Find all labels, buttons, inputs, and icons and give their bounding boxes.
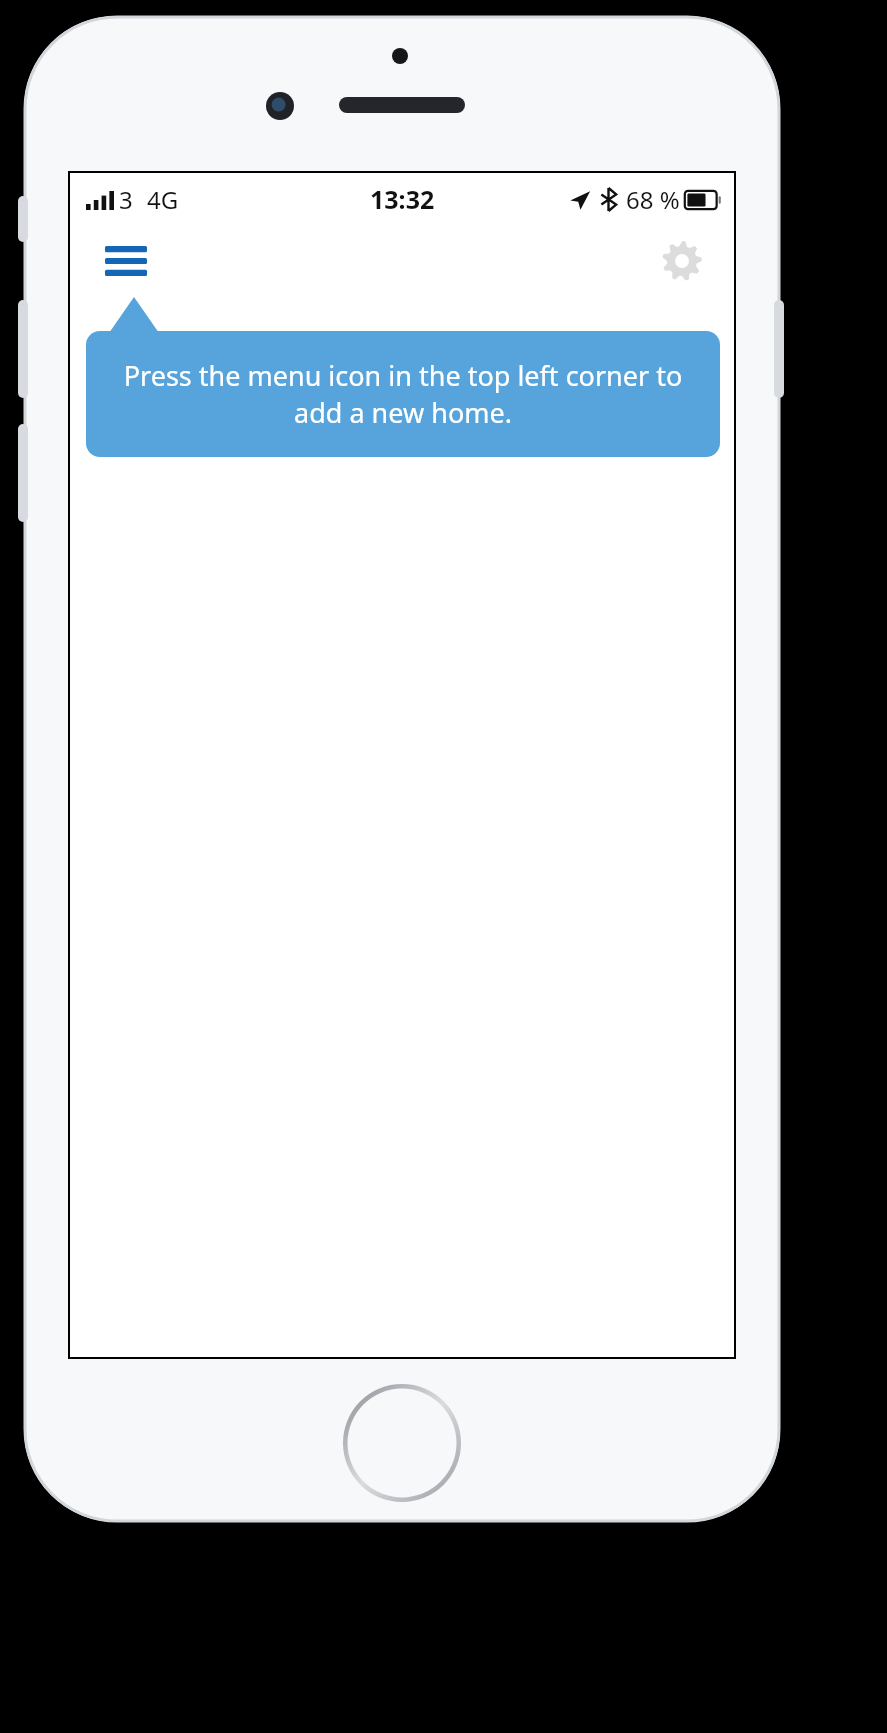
button[interactable]: Open navigation menu xyxy=(98,233,154,289)
button[interactable]: Settings xyxy=(654,233,710,289)
staticText: Press the menu icon in the top left corn… xyxy=(108,357,698,431)
staticText: 4G xyxy=(147,183,179,216)
staticText: 68 % xyxy=(626,183,680,216)
button[interactable]: Press the menu icon in the top left corn… xyxy=(86,331,720,457)
staticText: 3 xyxy=(119,183,133,216)
staticText: 13:32 xyxy=(370,182,435,216)
